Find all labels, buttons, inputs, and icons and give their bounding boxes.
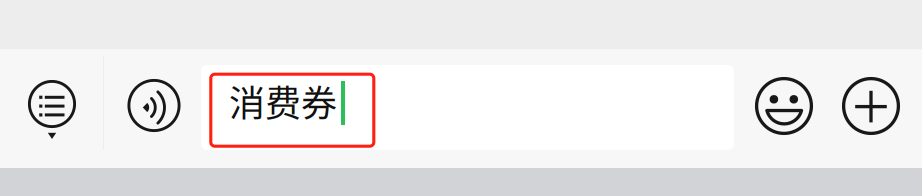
button[interactable]: Emoji: [754, 76, 814, 136]
button[interactable]: Voice input: [127, 78, 181, 132]
button[interactable]: Quick replies: [23, 80, 81, 144]
button[interactable]: More options: [841, 76, 901, 136]
button[interactable]: Message input: [201, 65, 734, 150]
staticText: 消费券: [229, 75, 337, 127]
